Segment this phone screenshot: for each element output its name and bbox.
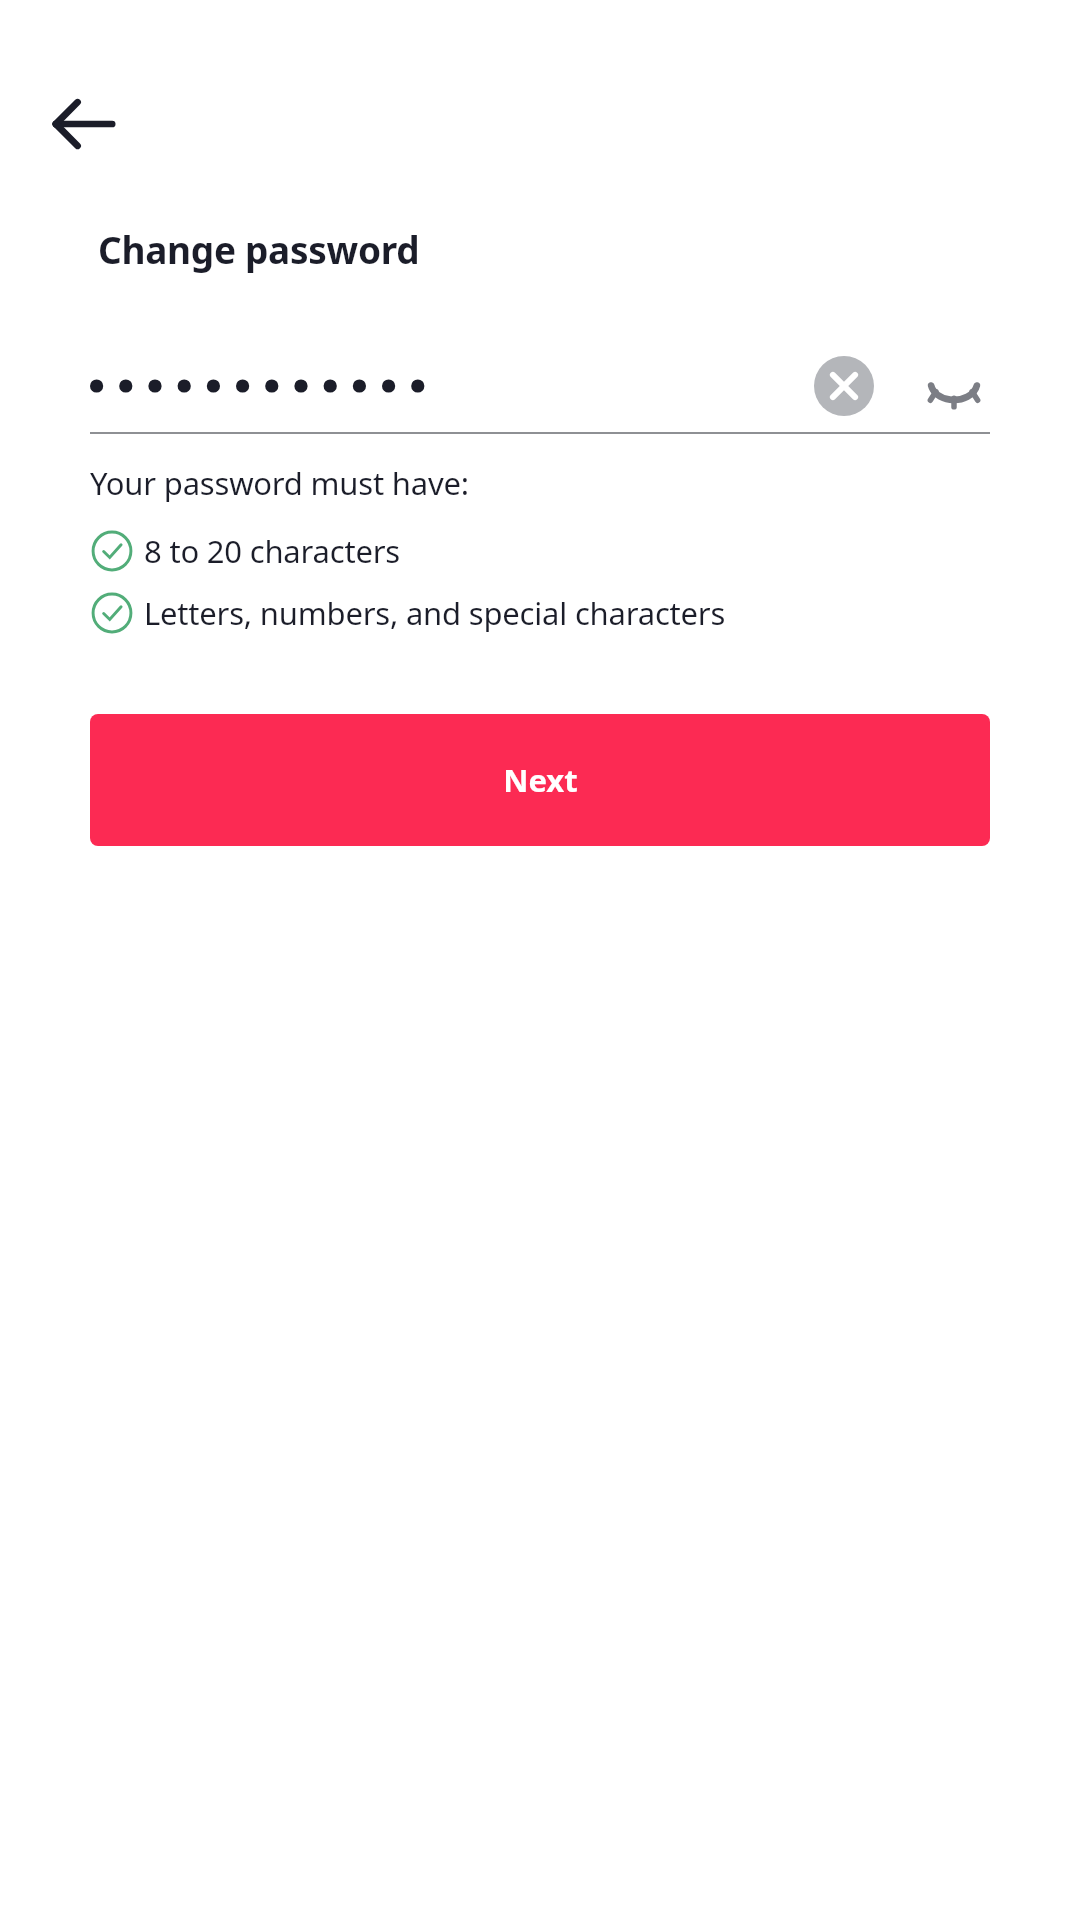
button[interactable]: Show password <box>918 350 990 422</box>
button[interactable]: Back <box>36 76 132 172</box>
staticText: 8 to 20 characters <box>144 530 400 572</box>
staticText: Change password <box>98 224 420 274</box>
staticText: Your password must have: <box>90 462 469 504</box>
staticText: Next <box>503 759 578 801</box>
button[interactable]: Clear password <box>808 350 880 422</box>
button[interactable]: Next <box>90 714 990 846</box>
staticText: Letters, numbers, and special characters <box>144 592 726 634</box>
